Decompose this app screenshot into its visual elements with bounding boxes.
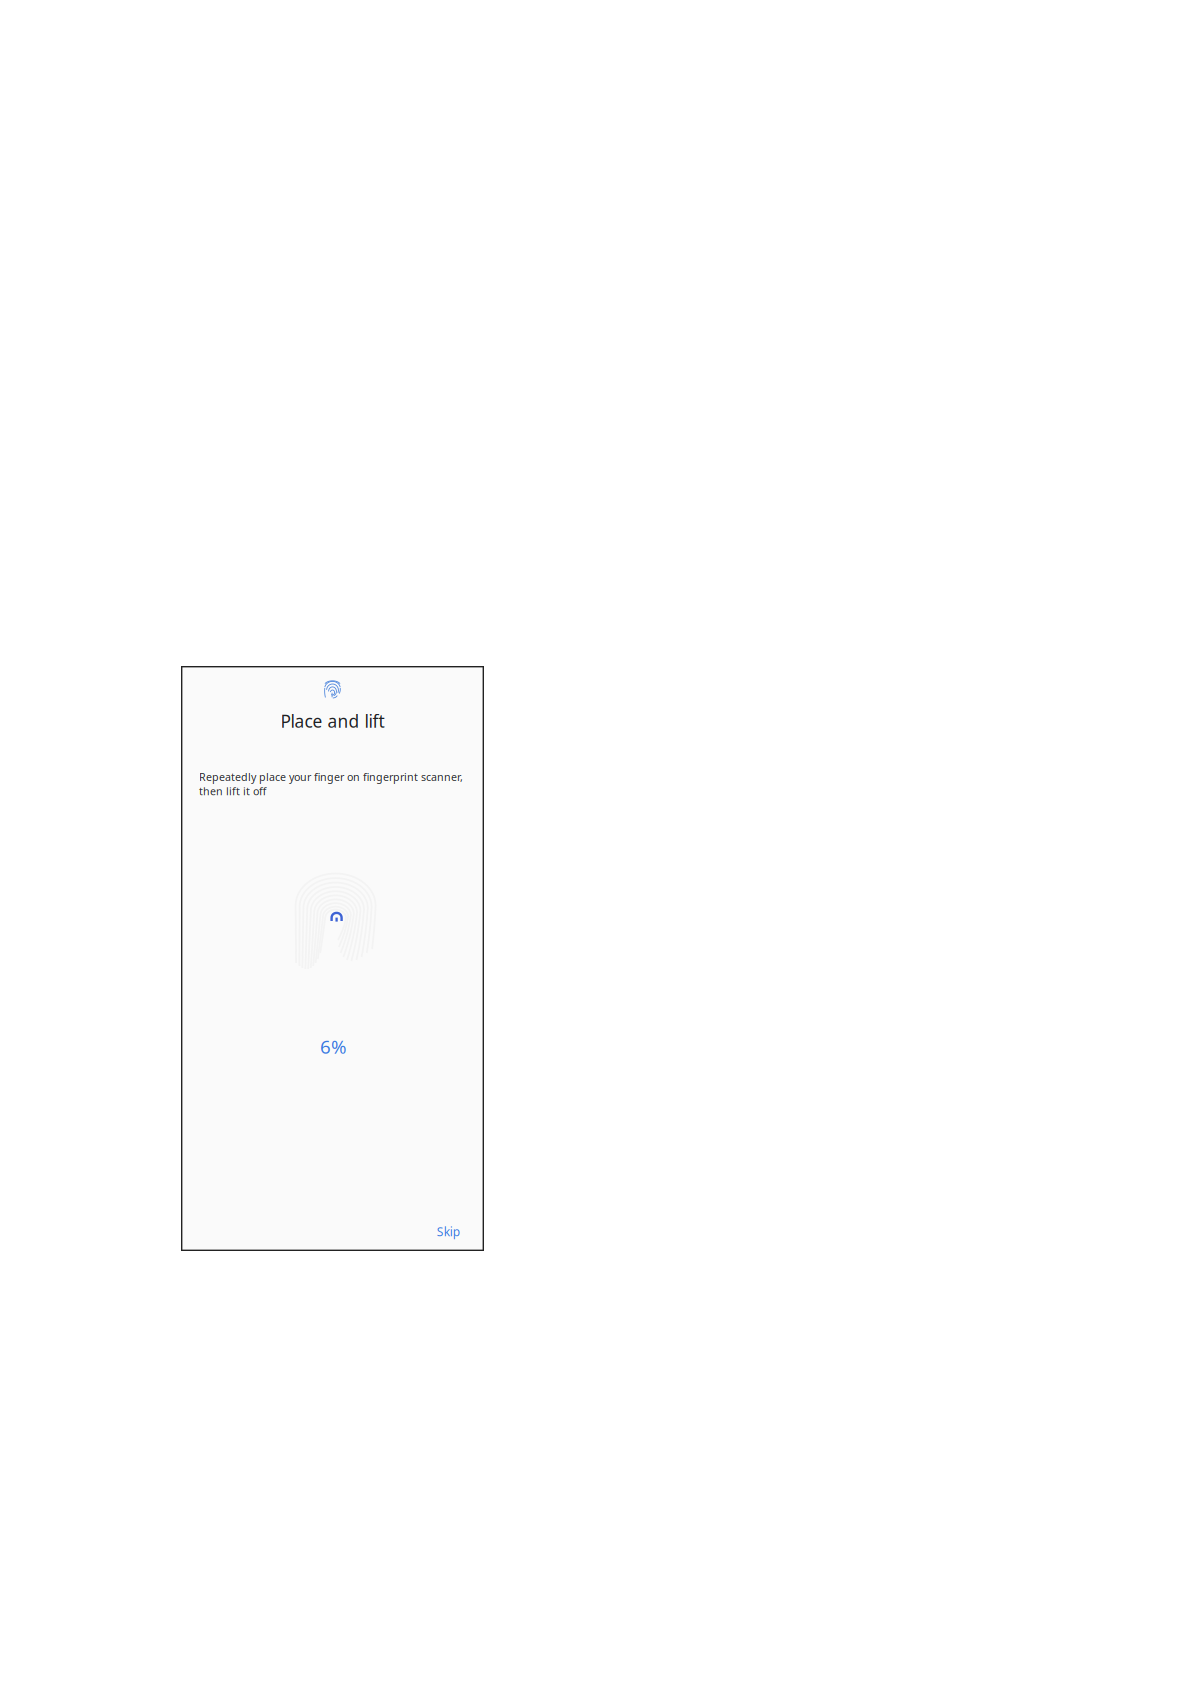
staticText: Skip bbox=[437, 1223, 460, 1239]
staticText: Repeatedly place your finger on fingerpr… bbox=[199, 770, 463, 798]
staticText: Place and lift bbox=[280, 709, 384, 732]
staticText: 6% bbox=[320, 1034, 347, 1059]
button[interactable]: Skip bbox=[429, 1217, 468, 1245]
